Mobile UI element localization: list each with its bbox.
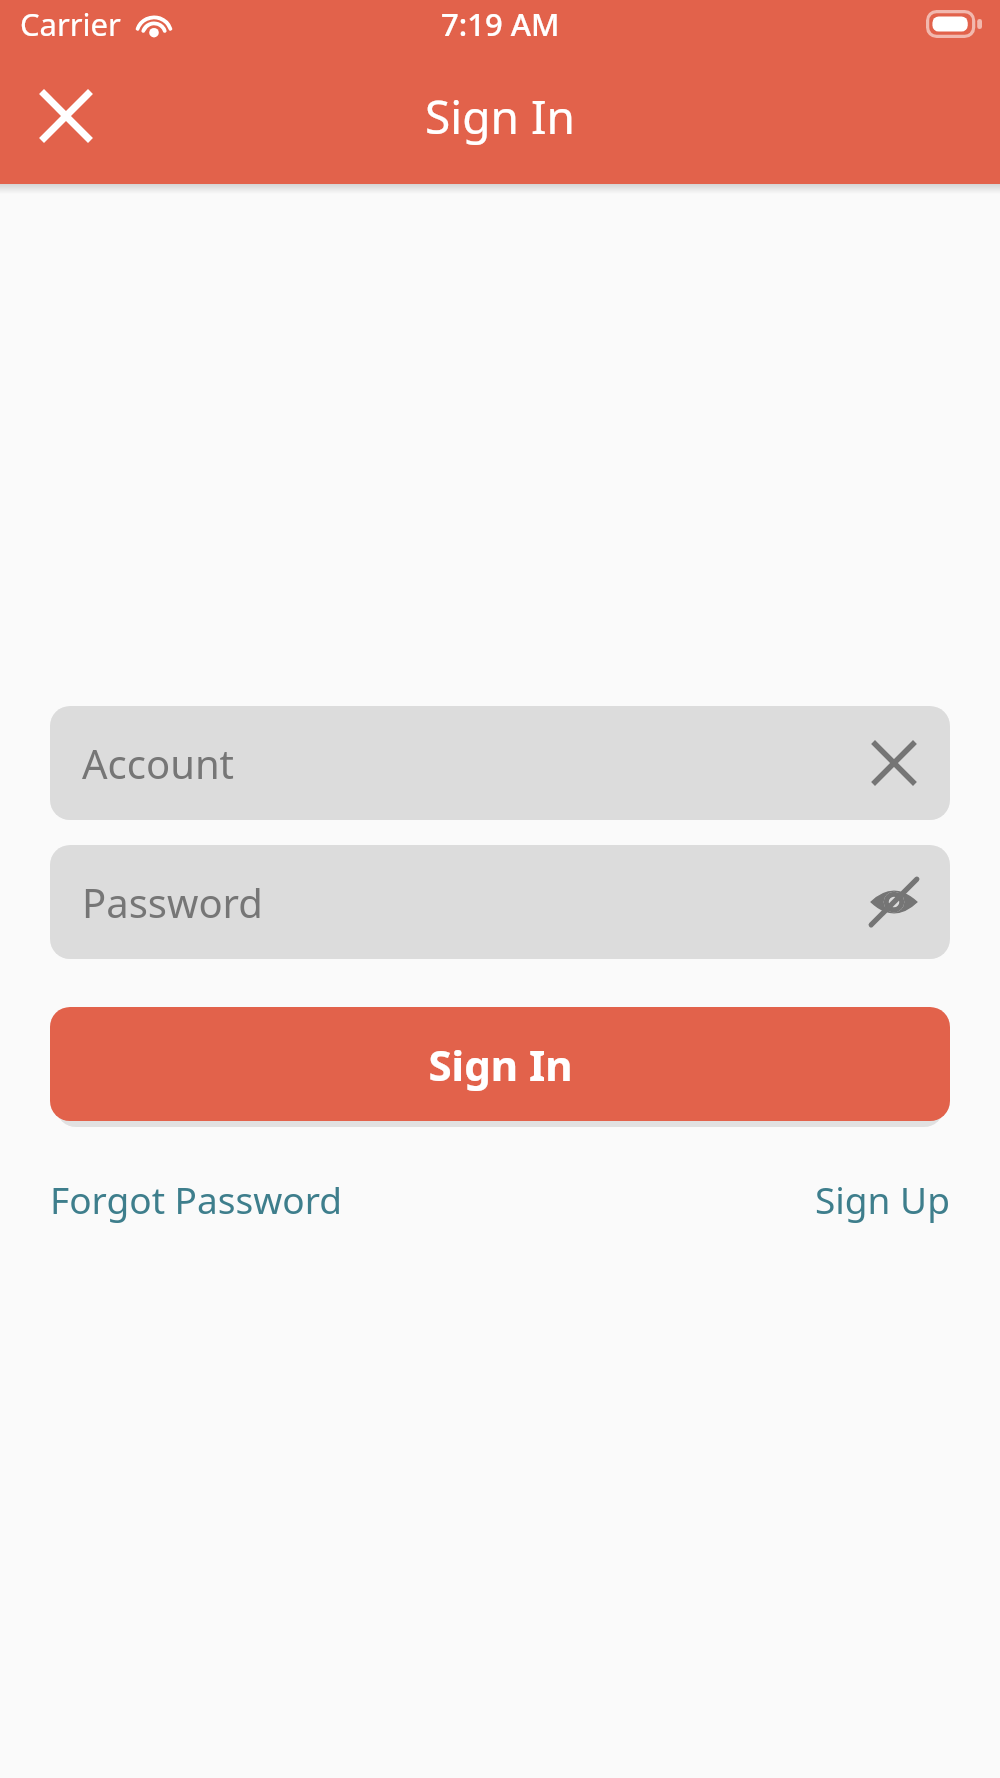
button[interactable]: Account: [50, 706, 950, 820]
staticText: Forgot Password: [50, 1174, 342, 1224]
button[interactable]: Show password: [864, 872, 924, 932]
staticText: Sign In: [428, 1036, 573, 1093]
button[interactable]: Sign Up: [815, 1168, 950, 1230]
staticText: Account: [82, 736, 864, 790]
button[interactable]: Password: [50, 845, 950, 959]
button[interactable]: Sign In: [50, 1007, 950, 1121]
staticText: Password: [82, 875, 864, 929]
staticText: Sign In: [425, 85, 575, 148]
staticText: Sign Up: [815, 1174, 950, 1224]
staticText: 7:19 AM: [441, 3, 560, 45]
button[interactable]: Forgot Password: [50, 1168, 342, 1230]
button[interactable]: Close: [22, 72, 110, 160]
button[interactable]: Clear account: [864, 733, 924, 793]
staticText: Carrier: [20, 3, 121, 45]
